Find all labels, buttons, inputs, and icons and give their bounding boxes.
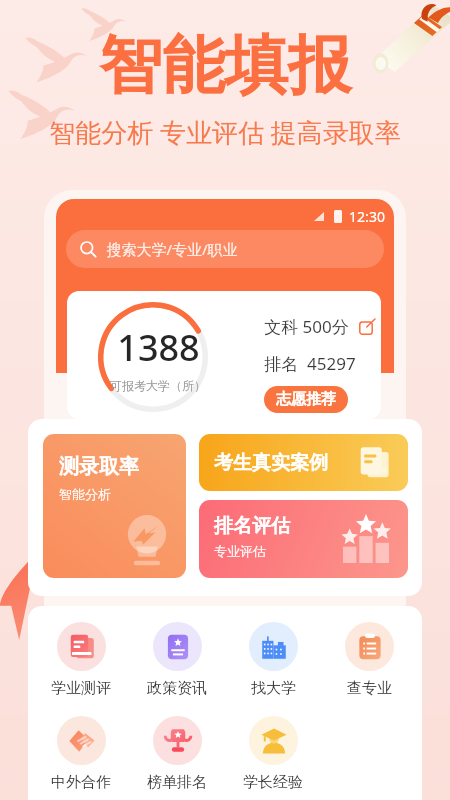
staticText: 榜单排名 (147, 773, 207, 792)
staticText: 政策资讯 (147, 679, 207, 698)
button[interactable]: 中外合作 (33, 716, 129, 792)
staticText: 专业评估 (214, 543, 266, 559)
button[interactable]: 学业测评 (33, 622, 129, 698)
staticText: 找大学 (251, 679, 296, 698)
staticText: 排名评估 (214, 514, 290, 538)
button[interactable]: 考生真实案例 (199, 434, 408, 491)
other: 编辑分数 (359, 319, 375, 335)
staticText: 学长经验 (243, 773, 303, 792)
staticText: 1388 (117, 323, 200, 372)
button[interactable]: 搜索大学/专业/职业 (66, 230, 384, 268)
button[interactable]: 查专业 (321, 622, 417, 698)
staticText: 12:30 (349, 207, 385, 226)
staticText: 文科 500分 (264, 315, 349, 338)
button[interactable]: 榜单排名 (129, 716, 225, 792)
staticText: 排名 45297 (264, 352, 356, 375)
staticText: 搜索大学/专业/职业 (106, 239, 238, 259)
staticText: 考生真实案例 (214, 451, 328, 475)
button[interactable]: 找大学 (225, 622, 321, 698)
staticText: 志愿推荐 (276, 390, 336, 409)
button[interactable]: 志愿推荐 (264, 386, 348, 413)
staticText: 智能分析 (59, 486, 111, 502)
staticText: 智能填报 (99, 26, 351, 105)
staticText: 可报考大学（所） (110, 378, 206, 393)
button[interactable]: 排名评估 (199, 500, 408, 578)
staticText: 学业测评 (51, 679, 111, 698)
staticText: 测录取率 (59, 454, 139, 479)
staticText: 查专业 (347, 679, 392, 698)
staticText: 中外合作 (51, 773, 111, 792)
button[interactable]: 测录取率 (43, 434, 186, 578)
button[interactable]: 政策资讯 (129, 622, 225, 698)
staticText: 智能分析 专业评估 提高录取率 (49, 114, 401, 150)
button[interactable]: 学长经验 (225, 716, 321, 792)
